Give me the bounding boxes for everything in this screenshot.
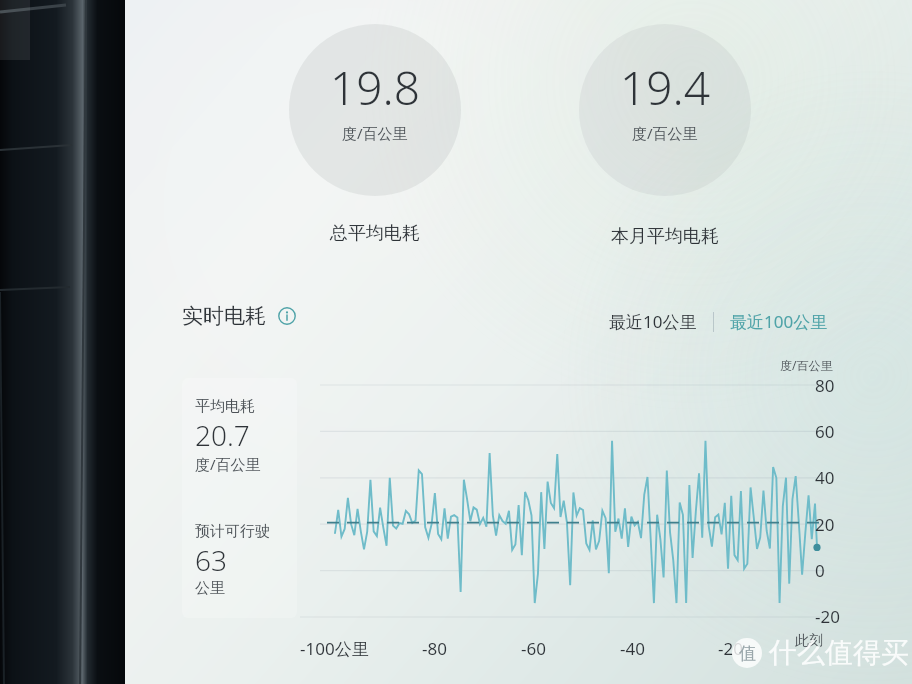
button[interactable]: 实时电耗 (182, 303, 296, 329)
other: Information about real-time consumption (278, 307, 296, 325)
staticText: 此刻 (795, 632, 823, 650)
staticText: -20 (815, 605, 840, 628)
staticText: 60 (815, 420, 835, 443)
staticText: 本月平均电耗 (611, 225, 719, 248)
staticText: 什么值得买 (769, 635, 909, 670)
staticText: 19.8 (330, 56, 421, 119)
staticText: 值 (739, 643, 756, 664)
staticText: 总平均电耗 (330, 222, 420, 245)
staticText: 最近10公里 (609, 310, 697, 333)
button[interactable]: 最近100公里 (728, 306, 830, 337)
button[interactable]: 19.8 (289, 56, 461, 143)
staticText: 平均电耗 (195, 397, 255, 416)
staticText: 度/百公里 (195, 454, 261, 474)
staticText: 40 (815, 466, 835, 489)
button[interactable]: 预计可行驶 (195, 522, 305, 598)
button[interactable]: 平均电耗 (195, 397, 305, 474)
staticText: 实时电耗 (182, 303, 266, 329)
button[interactable]: 最近10公里 (607, 306, 699, 337)
staticText: 度/百公里 (342, 123, 408, 143)
staticText: -60 (521, 637, 546, 660)
staticText: -80 (422, 637, 447, 660)
staticText: 80 (815, 374, 835, 397)
staticText: 63 (195, 541, 227, 579)
staticText: -100公里 (300, 637, 369, 660)
staticText: 公里 (195, 579, 225, 598)
staticText: 0 (815, 559, 825, 582)
button[interactable]: 19.4 (579, 56, 751, 143)
staticText: 20.7 (195, 416, 250, 454)
staticText: -20 (718, 637, 743, 660)
staticText: -40 (620, 637, 645, 660)
staticText: 预计可行驶 (195, 522, 270, 541)
staticText: 最近100公里 (730, 310, 828, 333)
staticText: 度/百公里 (780, 357, 833, 373)
staticText: 19.4 (620, 56, 711, 119)
staticText: 度/百公里 (632, 123, 698, 143)
staticText: 20 (815, 513, 835, 536)
